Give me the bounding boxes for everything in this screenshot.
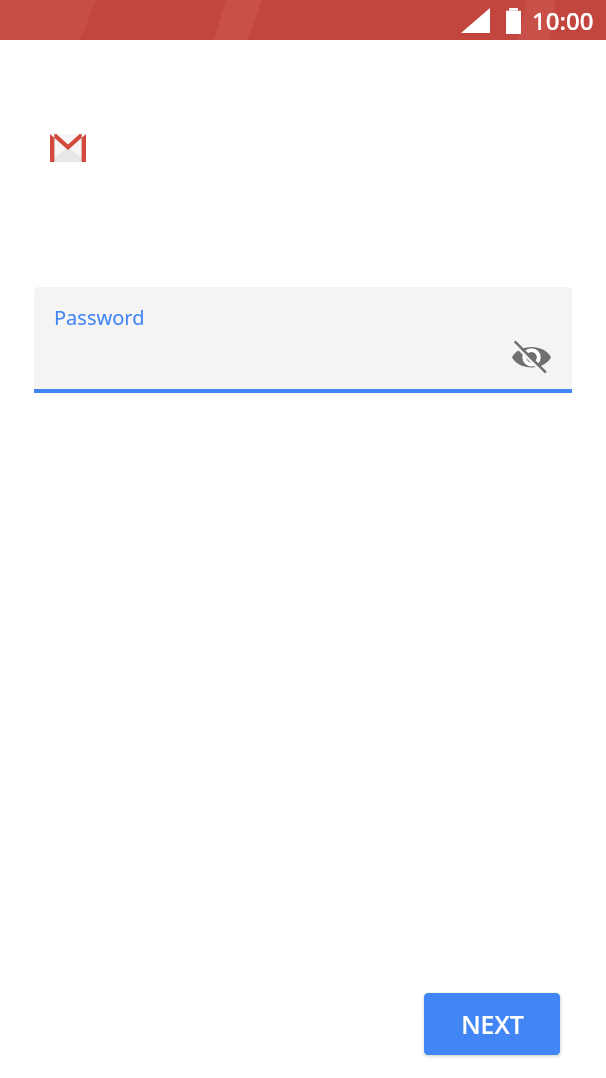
button[interactable]: Toggle password visibility [507,331,555,379]
staticText: NEXT [461,1007,524,1041]
staticText: Password [54,304,145,331]
button[interactable]: Password [34,287,572,389]
staticText: 10:00 [532,4,594,37]
button[interactable]: NEXT [424,993,560,1055]
